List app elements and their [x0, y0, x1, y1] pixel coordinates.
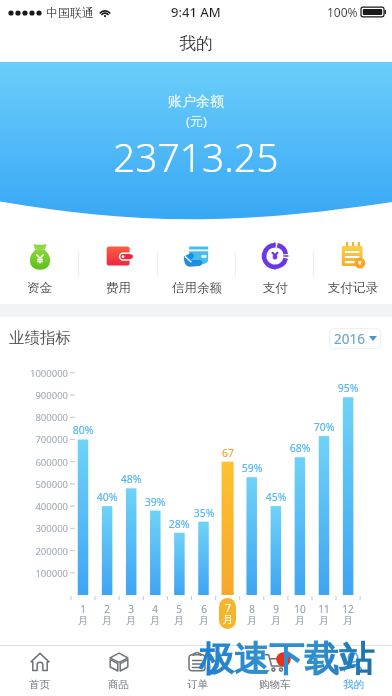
staticText: 8 月: [240, 602, 264, 627]
staticText: 7 月: [223, 601, 233, 626]
staticText: 68%: [287, 441, 313, 455]
staticText: 6 月: [192, 602, 216, 627]
staticText: 极速下载站: [199, 637, 374, 681]
staticText: 账户余额: [168, 93, 224, 111]
staticText: 40%: [94, 490, 120, 504]
staticText: 800000: [18, 411, 68, 424]
staticText: 费用: [106, 280, 131, 296]
staticText: 1000000: [18, 367, 68, 380]
staticText: 我的: [343, 678, 364, 691]
button[interactable]: 订单: [158, 646, 236, 696]
staticText: 中国联通: [46, 5, 94, 20]
button[interactable]: 支付: [236, 236, 314, 302]
staticText: 我的: [179, 33, 213, 54]
button[interactable]: 商品: [79, 646, 158, 696]
staticText: 资金: [27, 280, 52, 296]
staticText: 70%: [311, 420, 337, 434]
button[interactable]: 2016: [329, 328, 381, 349]
staticText: 2 月: [95, 602, 119, 627]
button[interactable]: 信用余额: [158, 236, 236, 302]
staticText: 订单: [187, 678, 208, 691]
button[interactable]: 我的: [314, 646, 392, 696]
staticText: 100%: [327, 4, 358, 20]
button[interactable]: 费用: [79, 236, 158, 302]
staticText: 12 月: [336, 602, 360, 627]
staticText: 首页: [29, 678, 50, 691]
staticText: 4 月: [143, 602, 167, 627]
staticText: 300000: [18, 522, 68, 535]
staticText: 10 月: [288, 602, 312, 627]
staticText: 200000: [18, 545, 68, 558]
button[interactable]: 首页: [0, 646, 79, 696]
staticText: 购物车: [259, 678, 291, 691]
staticText: 2016: [334, 330, 365, 348]
staticText: 3 月: [119, 602, 143, 627]
button[interactable]: 资金: [0, 236, 79, 302]
button[interactable]: 购物车: [236, 646, 314, 696]
staticText: (元): [186, 112, 207, 130]
staticText: 400000: [18, 500, 68, 513]
staticText: 39%: [142, 495, 168, 509]
staticText: 1 月: [71, 602, 95, 627]
staticText: 23713.25: [113, 130, 279, 183]
staticText: 支付记录: [328, 280, 378, 296]
staticText: 支付: [263, 280, 288, 296]
staticText: 5 月: [167, 602, 191, 627]
button[interactable]: 支付记录: [314, 236, 392, 302]
staticText: 100000: [18, 567, 68, 580]
staticText: 45%: [263, 490, 289, 504]
staticText: 700000: [18, 433, 68, 446]
staticText: 80%: [70, 423, 96, 437]
staticText: 业绩指标: [9, 328, 71, 348]
staticText: 900000: [18, 389, 68, 402]
staticText: 信用余额: [172, 280, 222, 296]
staticText: 500000: [18, 478, 68, 491]
staticText: 商品: [108, 678, 129, 691]
staticText: 9 月: [264, 602, 288, 627]
staticText: 67: [215, 446, 241, 460]
staticText: 600000: [18, 456, 68, 469]
staticText: 48%: [118, 472, 144, 486]
staticText: 95%: [335, 381, 361, 395]
staticText: 9:41 AM: [171, 3, 221, 21]
staticText: 28%: [166, 517, 192, 531]
staticText: 35%: [191, 506, 217, 520]
staticText: 59%: [239, 461, 265, 475]
staticText: 11 月: [312, 602, 336, 627]
button[interactable]: 7 月: [219, 598, 236, 629]
